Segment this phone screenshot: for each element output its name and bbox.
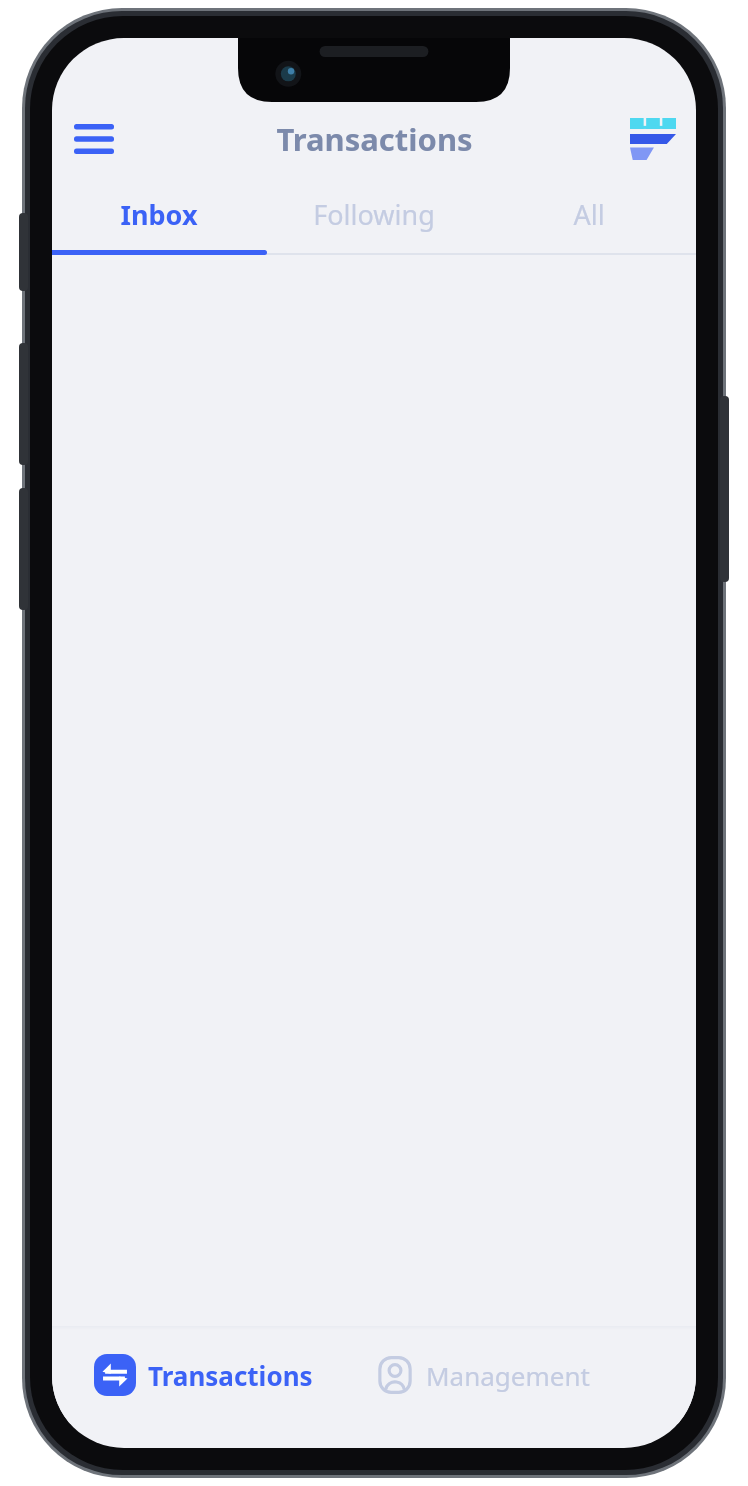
staticText: Transactions	[148, 1358, 313, 1393]
staticText: Inbox	[120, 196, 198, 233]
staticText: Transactions	[276, 118, 473, 160]
button[interactable]: Transactions	[52, 1326, 374, 1424]
button[interactable]: Following	[266, 178, 481, 250]
staticText: All	[573, 196, 605, 233]
button[interactable]: Filter	[624, 110, 682, 168]
button[interactable]: Menu	[66, 111, 122, 167]
button[interactable]: Management	[374, 1326, 696, 1424]
staticText: Management	[426, 1358, 590, 1393]
button[interactable]: Inbox	[52, 178, 266, 250]
staticText: Following	[313, 196, 435, 233]
button[interactable]: All	[481, 178, 696, 250]
